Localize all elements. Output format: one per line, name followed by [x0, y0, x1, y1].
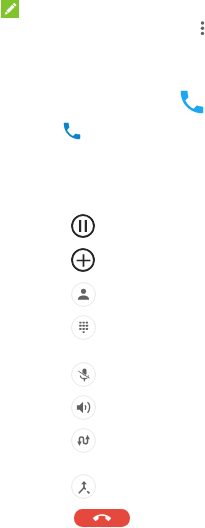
button[interactable]: More options: [190, 14, 205, 42]
button[interactable]: Speaker: [71, 395, 96, 420]
button[interactable]: Merge calls: [71, 474, 96, 499]
button[interactable]: Edit: [1, 0, 19, 18]
button[interactable]: End call: [74, 509, 130, 527]
button[interactable]: Hold: [71, 214, 95, 238]
button[interactable]: Add call: [71, 248, 95, 272]
button[interactable]: Mute: [71, 362, 96, 387]
button[interactable]: Contacts: [71, 282, 96, 307]
button[interactable]: Dialpad: [71, 315, 96, 340]
button[interactable]: Swap calls: [71, 428, 96, 453]
